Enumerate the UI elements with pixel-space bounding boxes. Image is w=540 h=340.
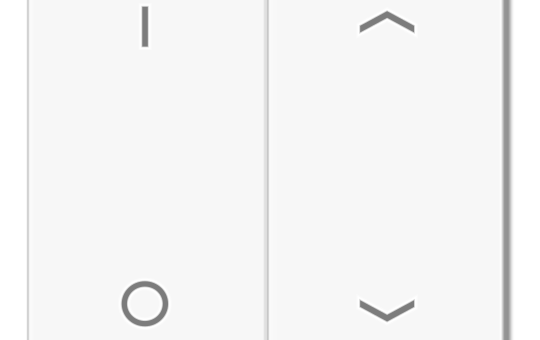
button[interactable]: Light off [0,0,540,340]
button[interactable]: Blinds down [0,0,540,340]
button[interactable]: Light on [0,0,540,340]
button[interactable]: Blinds up [0,0,540,340]
